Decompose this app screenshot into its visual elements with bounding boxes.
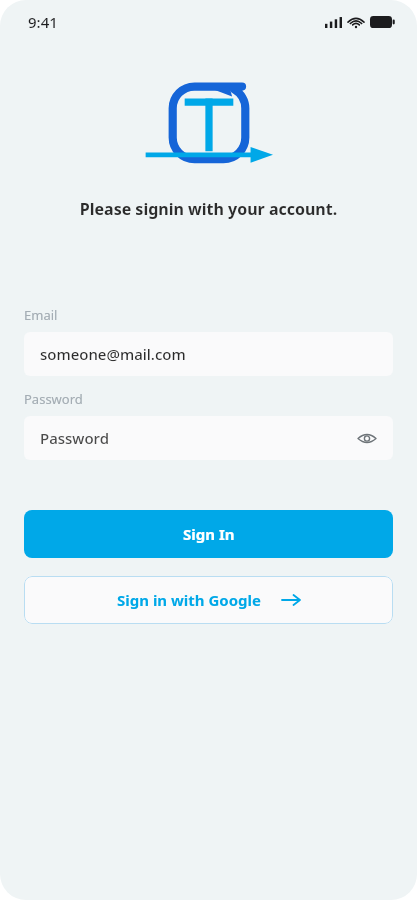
staticText: Sign In — [183, 524, 235, 544]
button[interactable]: Sign In — [24, 510, 393, 558]
staticText: someone@mail.com — [40, 344, 186, 364]
staticText: Password — [40, 428, 109, 448]
staticText: 9:41 — [28, 12, 58, 32]
button[interactable]: someone@mail.com — [24, 332, 393, 376]
staticText: Sign in with Google — [117, 590, 262, 610]
button[interactable]: Sign in with Google — [24, 576, 393, 624]
staticText: Password — [24, 390, 83, 408]
staticText: Please signin with your account. — [0, 198, 417, 220]
button[interactable]: Password — [24, 416, 393, 460]
staticText: Email — [24, 306, 58, 324]
button[interactable]: Show password — [353, 424, 381, 452]
